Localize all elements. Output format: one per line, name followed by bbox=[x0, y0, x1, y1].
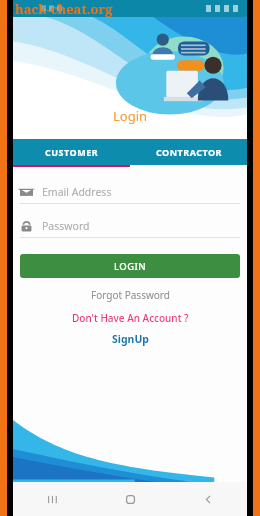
button[interactable]: Forgot Password bbox=[20, 287, 240, 303]
other: Email Address bbox=[20, 186, 33, 199]
other: Password bbox=[20, 220, 33, 233]
staticText: Forgot Password bbox=[91, 288, 170, 302]
button[interactable]: CUSTOMER bbox=[13, 139, 130, 165]
button[interactable]: Password bbox=[20, 215, 240, 238]
button[interactable]: Don't Have An Account ? bbox=[20, 310, 240, 326]
staticText: hack-cheat.org bbox=[15, 0, 113, 17]
staticText: Login bbox=[113, 107, 148, 125]
staticText: SignUp bbox=[112, 332, 149, 346]
staticText: LOGIN bbox=[114, 260, 146, 273]
button[interactable]: SignUp bbox=[20, 331, 240, 347]
staticText: Password bbox=[42, 219, 90, 233]
staticText: Don't Have An Account ? bbox=[72, 311, 189, 325]
button[interactable]: LOGIN bbox=[20, 254, 240, 278]
button[interactable]: Email Address bbox=[20, 181, 240, 204]
staticText: CONTRACTOR bbox=[156, 146, 222, 158]
button[interactable]: Home bbox=[91, 482, 169, 516]
button[interactable]: Recents bbox=[13, 482, 91, 516]
staticText: Email Address bbox=[42, 185, 112, 199]
staticText: CUSTOMER bbox=[45, 146, 99, 158]
button[interactable]: CONTRACTOR bbox=[130, 139, 247, 165]
button[interactable]: Back bbox=[169, 482, 247, 516]
